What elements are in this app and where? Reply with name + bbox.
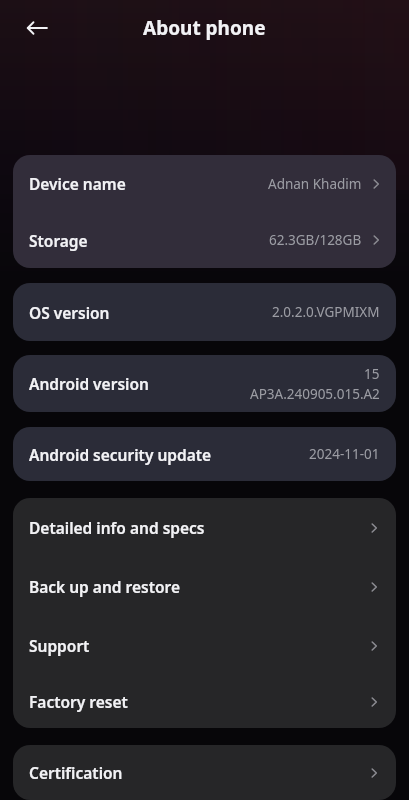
staticText: Adnan Khadim	[268, 175, 362, 193]
staticText: 62.3GB/128GB	[269, 231, 362, 249]
button[interactable]: Storage	[13, 212, 396, 268]
button[interactable]: Back	[16, 7, 58, 49]
button[interactable]: Certification	[13, 745, 396, 800]
button[interactable]: Factory reset	[13, 675, 396, 728]
button[interactable]: Detailed info and specs	[13, 498, 396, 557]
button[interactable]: Back up and restore	[13, 557, 396, 616]
staticText: About phone	[143, 15, 266, 41]
staticText: 2.0.2.0.VGPMIXM	[272, 303, 380, 321]
staticText: Storage	[29, 230, 88, 251]
staticText: Android security update	[29, 444, 212, 465]
button[interactable]: OS version	[13, 283, 396, 341]
staticText: Device name	[29, 173, 126, 194]
staticText: AP3A.240905.015.A2	[250, 385, 380, 403]
staticText: 2024-11-01	[309, 445, 380, 463]
staticText: Certification	[29, 762, 123, 783]
button[interactable]: Android version	[13, 355, 396, 412]
staticText: Support	[29, 635, 90, 656]
staticText: OS version	[29, 302, 110, 323]
staticText: Android version	[29, 373, 149, 394]
staticText: Factory reset	[29, 691, 128, 712]
staticText: Back up and restore	[29, 576, 180, 597]
staticText: Detailed info and specs	[29, 517, 205, 538]
button[interactable]: Device name	[13, 155, 396, 212]
button[interactable]: Support	[13, 616, 396, 675]
staticText: 15	[364, 365, 380, 383]
button[interactable]: Android security update	[13, 427, 396, 481]
